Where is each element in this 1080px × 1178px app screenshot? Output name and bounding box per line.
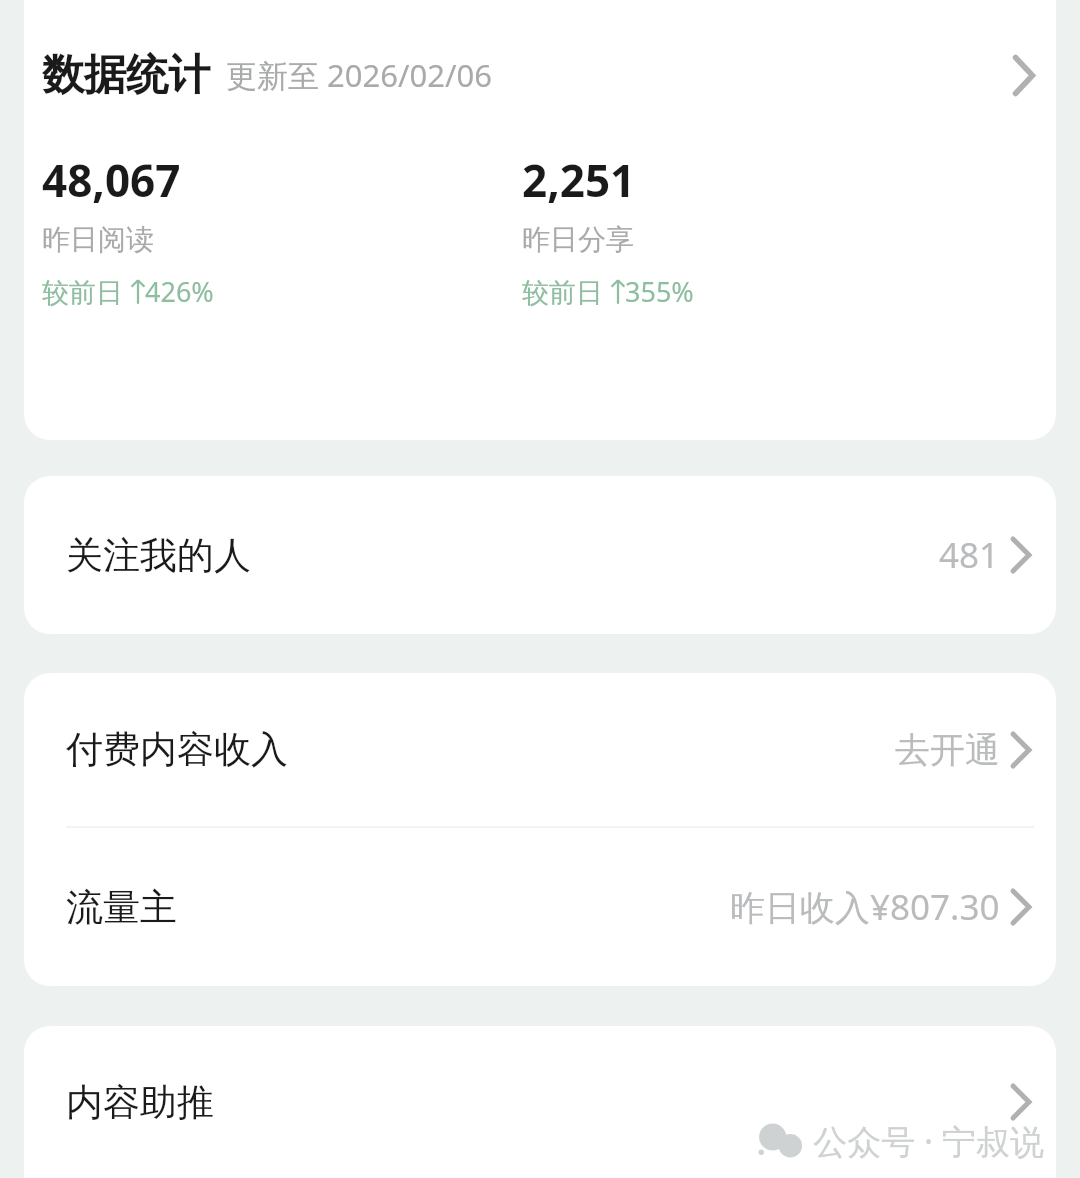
button[interactable]: 付费内容收入 [24,673,1056,826]
staticText: 较前日 [522,273,611,310]
staticText: 较前日 [42,273,131,310]
staticText: 流量主 [66,884,177,931]
staticText: 2,251 [522,150,636,210]
staticText: 481 [939,531,1000,579]
staticText: 更新至 2026/02/06 [226,54,492,96]
staticText: 关注我的人 [66,532,251,579]
button[interactable]: 内容助推 [24,1026,1056,1178]
staticText: 去开通 [895,728,1000,772]
button[interactable]: 关注我的人 [24,476,1056,634]
staticText: 内容助推 [66,1079,214,1126]
staticText: 公众号 · 宁叔说 [813,1118,1044,1164]
staticText: 48,067 [42,150,181,210]
staticText: 昨日分享 [522,222,634,257]
staticText: 昨日收入¥807.30 [730,883,1000,931]
staticText: 数据统计 [42,49,210,102]
staticText: 355% [625,273,694,310]
staticText: 426% [145,273,214,310]
button[interactable]: 流量主 [24,828,1056,986]
staticText: 付费内容收入 [66,726,288,773]
staticText: 昨日阅读 [42,222,154,257]
button[interactable]: 数据统计 [24,0,1056,440]
